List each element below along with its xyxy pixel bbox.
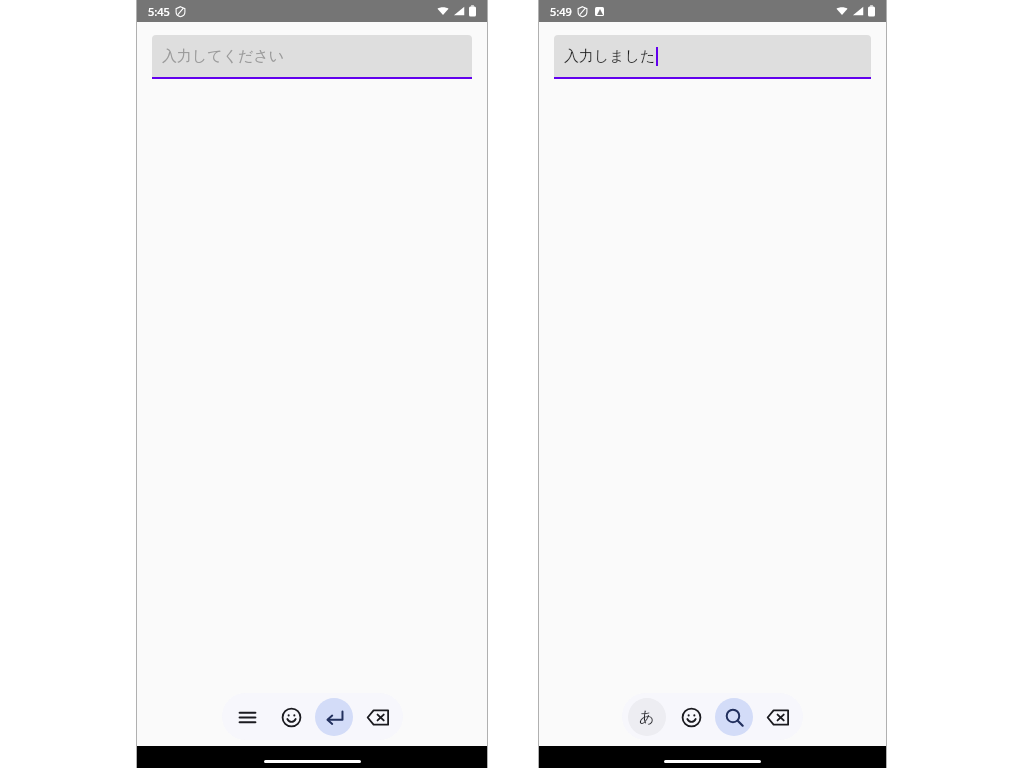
button[interactable]: Search	[715, 698, 753, 736]
button[interactable]: Delete	[359, 698, 397, 736]
button[interactable]: Emoji	[272, 698, 310, 736]
button[interactable]: Delete	[759, 698, 797, 736]
button[interactable]: Menu	[228, 698, 266, 736]
button[interactable]: 入力しました	[554, 35, 871, 79]
staticText: 5:49	[550, 4, 572, 19]
staticText: 5:45	[148, 4, 170, 19]
button[interactable]: 入力してください	[152, 35, 472, 79]
button[interactable]: Input mode	[628, 698, 666, 736]
staticText: 入力してください	[162, 47, 285, 66]
button[interactable]: Emoji	[672, 698, 710, 736]
staticText: 入力しました	[564, 47, 656, 66]
button[interactable]: Enter	[315, 698, 353, 736]
staticText: あ	[639, 708, 655, 727]
